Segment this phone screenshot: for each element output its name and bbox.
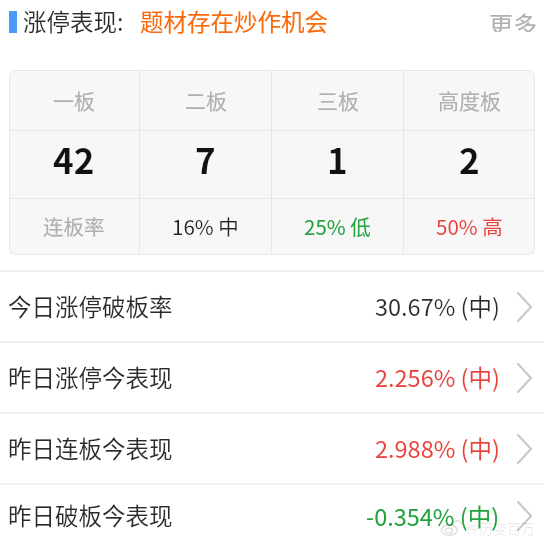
staticText: 昨日连板今表现: [8, 431, 173, 465]
other: 查看详情: [517, 292, 532, 322]
staticText: 更多: [489, 6, 537, 32]
staticText: 2: [459, 133, 480, 184]
staticText: 题材存在炒作机会: [140, 4, 328, 38]
staticText: 25% 低: [304, 211, 371, 241]
staticText: 三板: [317, 85, 359, 115]
button[interactable]: 更多: [479, 0, 544, 44]
button[interactable]: 昨日破板今表现: [0, 485, 544, 547]
staticText: 高度板: [438, 85, 501, 115]
staticText: 连板率: [43, 211, 105, 241]
staticText: 一板: [53, 85, 95, 115]
staticText: 2.988% (中): [375, 431, 500, 465]
staticText: 30.67% (中): [375, 289, 500, 323]
staticText: 50% 高: [436, 211, 503, 241]
button[interactable]: 今日涨停破板率: [0, 272, 544, 341]
staticText: 今日涨停破板率: [8, 289, 173, 323]
staticText: 涨停表现:: [23, 4, 124, 38]
staticText: -0.354% (中): [366, 499, 500, 533]
button[interactable]: 昨日连板今表现: [0, 414, 544, 483]
other: 查看详情: [517, 363, 532, 393]
staticText: 2.256% (中): [375, 360, 500, 394]
staticText: 42: [53, 133, 95, 184]
staticText: 许历变百万: [465, 518, 535, 538]
other: 查看详情: [517, 434, 532, 464]
staticText: 7: [195, 133, 216, 184]
staticText: 二板: [185, 85, 227, 115]
staticText: 16% 中: [172, 211, 239, 241]
staticText: 昨日破板今表现: [8, 498, 173, 532]
other: 查看详情: [517, 501, 532, 531]
staticText: 昨日涨停今表现: [8, 360, 173, 394]
staticText: 1: [327, 133, 348, 184]
button[interactable]: 昨日涨停今表现: [0, 343, 544, 412]
